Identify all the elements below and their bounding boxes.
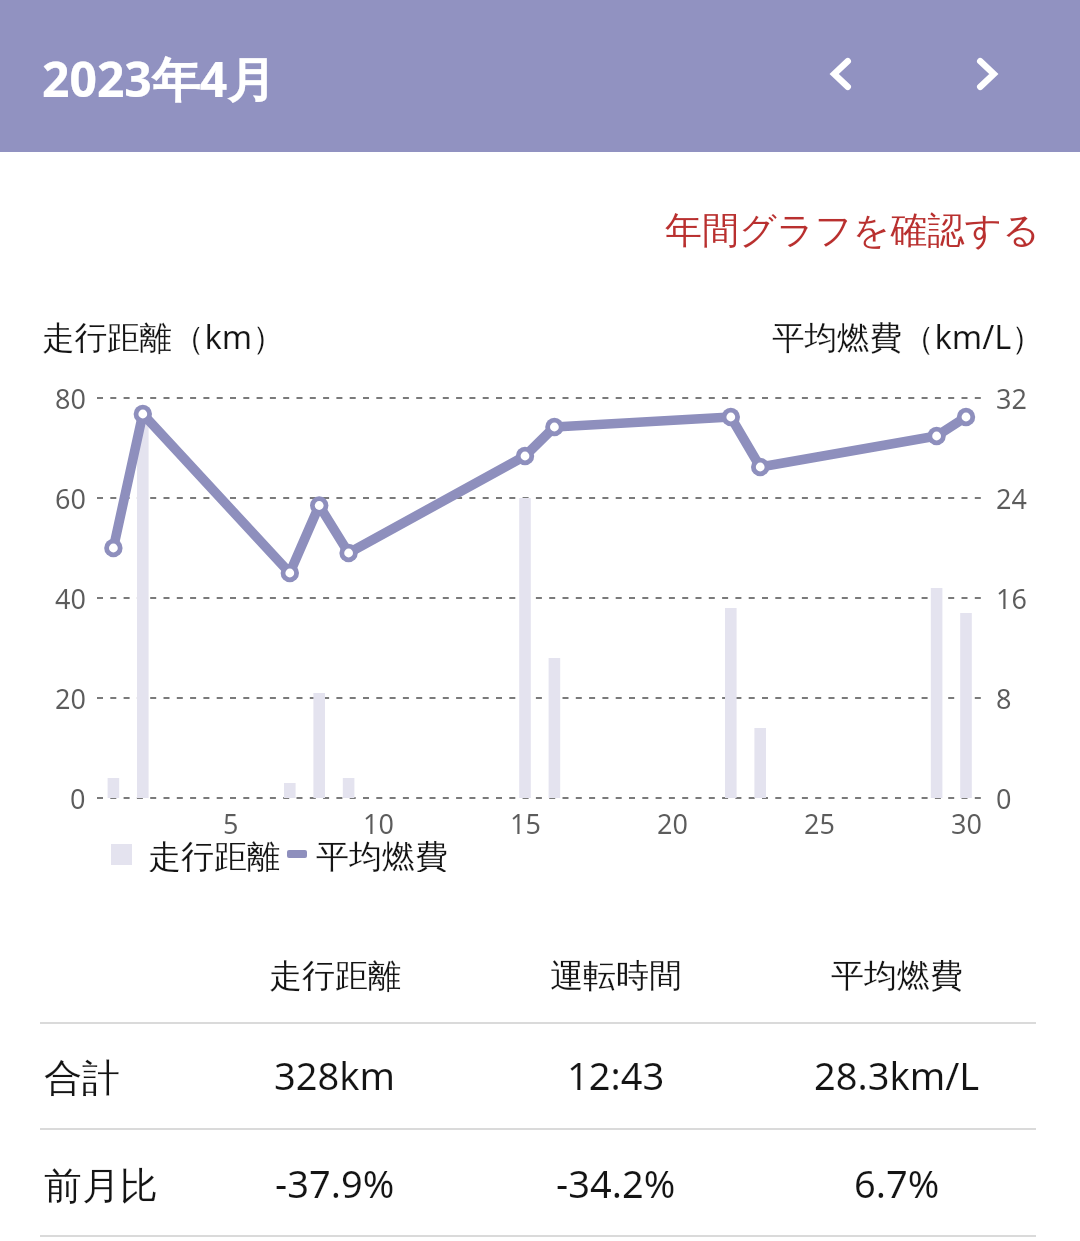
staticText: 平均燃費 [831,955,963,997]
staticText: 2023年4月 [42,46,276,112]
staticText: 運転時間 [550,955,682,997]
staticText: 16 [996,580,1027,617]
button[interactable]: Next month [937,24,1037,124]
staticText: 20 [55,680,86,717]
button[interactable]: 合計 [0,1022,1080,1128]
staticText: 328km [274,1049,396,1101]
button[interactable]: Previous month [791,24,891,124]
staticText: 32 [996,380,1027,417]
staticText: 0 [70,780,86,817]
staticText: 前月比 [44,1162,158,1210]
staticText: 走行距離（km） [42,314,285,358]
staticText: 80 [55,380,86,417]
staticText: 合計 [44,1054,120,1102]
staticText: 40 [55,580,86,617]
button[interactable]: 前月比 [0,1130,1080,1236]
staticText: 60 [55,480,86,517]
staticText: 12:43 [567,1049,665,1101]
staticText: 走行距離 [148,836,280,872]
staticText: -34.2% [556,1157,676,1209]
staticText: 8 [996,680,1012,717]
button[interactable]: 年間グラフを確認する [645,195,1080,266]
staticText: 30 [951,805,982,842]
staticText: 25 [804,805,835,842]
staticText: 20 [657,805,688,842]
staticText: 5 [223,805,239,842]
staticText: 28.3km/L [814,1049,980,1101]
staticText: 走行距離 [269,955,401,997]
staticText: 24 [996,480,1027,517]
staticText: 0 [996,780,1012,817]
staticText: 6.7% [854,1157,940,1209]
staticText: -37.9% [275,1157,395,1209]
staticText: 15 [510,805,541,842]
staticText: 10 [363,805,394,842]
staticText: 平均燃費（km/L） [772,314,1044,358]
staticText: 平均燃費 [316,836,448,872]
staticText: 年間グラフを確認する [665,207,1041,254]
